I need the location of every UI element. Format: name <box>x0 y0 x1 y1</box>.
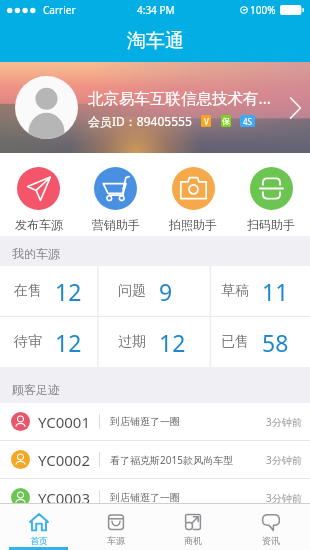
staticText: 顾客足迹 <box>12 382 60 397</box>
staticText: 问题 <box>118 282 146 300</box>
staticText: V <box>204 116 209 127</box>
staticText: 营销助手 <box>92 217 140 232</box>
button[interactable]: 问题 <box>104 266 207 316</box>
staticText: 已售 <box>221 333 249 351</box>
staticText: 在售 <box>14 282 42 300</box>
button[interactable]: YC0002 <box>0 441 310 478</box>
staticText: 12 <box>159 327 186 358</box>
staticText: 100% <box>250 3 276 17</box>
button[interactable]: 待审 <box>0 317 104 367</box>
staticText: 待审 <box>14 333 42 351</box>
button[interactable]: 扫码助手 <box>232 153 310 236</box>
staticText: 3分钟前 <box>266 453 302 467</box>
staticText: YC0002 <box>38 450 90 470</box>
staticText: 商机 <box>184 535 202 546</box>
button[interactable]: 营销助手 <box>77 153 154 236</box>
staticText: 到店铺逛了一圈 <box>110 491 266 504</box>
staticText: 我的车源 <box>12 246 60 261</box>
staticText: 到店铺逛了一圈 <box>110 415 266 428</box>
staticText: 过期 <box>118 333 146 351</box>
button[interactable]: YC0003 <box>0 479 310 516</box>
button[interactable]: YC0001 <box>0 403 310 440</box>
staticText: 会员ID：89405555 <box>88 113 192 129</box>
staticText: 资讯 <box>262 535 280 546</box>
button[interactable]: 过期 <box>104 317 207 367</box>
staticText: 北京易车互联信息技术有... <box>88 87 271 108</box>
button[interactable]: 资讯 <box>232 504 310 550</box>
staticText: 9 <box>159 276 173 307</box>
button[interactable]: 草稿 <box>207 266 310 316</box>
staticText: 58 <box>262 327 289 358</box>
button[interactable]: 拍照助手 <box>154 153 232 236</box>
button[interactable]: 首页 <box>0 504 77 550</box>
staticText: Carrier <box>43 3 76 17</box>
staticText: 保 <box>222 116 230 126</box>
staticText: 3分钟前 <box>266 491 302 505</box>
staticText: YC0003 <box>38 488 90 508</box>
staticText: 拍照助手 <box>169 217 217 232</box>
staticText: 12 <box>55 276 82 307</box>
staticText: YC0001 <box>38 412 90 432</box>
staticText: 4:34 PM <box>137 3 175 17</box>
staticText: 首页 <box>30 535 48 546</box>
other: Open profile <box>289 97 302 119</box>
staticText: 11 <box>262 276 289 307</box>
staticText: 3分钟前 <box>266 415 302 429</box>
button[interactable]: 车源 <box>77 504 154 550</box>
staticText: 草稿 <box>221 282 249 300</box>
staticText: 4S <box>243 116 252 127</box>
staticText: 发布车源 <box>15 217 63 232</box>
button[interactable]: 已售 <box>207 317 310 367</box>
staticText: 淘车通 <box>127 29 184 53</box>
staticText: 扫码助手 <box>247 217 295 232</box>
button[interactable]: 在售 <box>0 266 104 316</box>
button[interactable]: 发布车源 <box>0 153 77 236</box>
button[interactable]: 商机 <box>154 504 232 550</box>
staticText: 车源 <box>107 535 125 546</box>
staticText: 12 <box>55 327 82 358</box>
staticText: 看了福克斯2015款风尚车型 <box>110 453 266 467</box>
button[interactable]: 北京易车互联信息技术有... <box>0 62 310 153</box>
